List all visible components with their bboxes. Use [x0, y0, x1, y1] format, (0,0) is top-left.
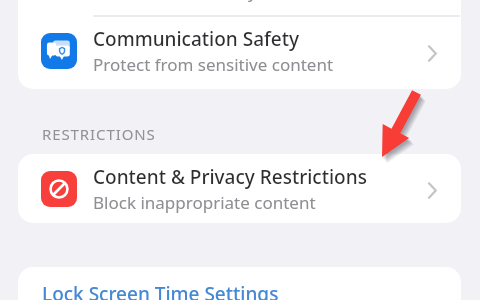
staticText: Lock Screen Time Settings [42, 281, 279, 300]
staticText: Protect from sensitive content [93, 53, 334, 76]
staticText: RESTRICTIONS [42, 124, 156, 144]
staticText: Content & Privacy Restrictions [93, 164, 367, 190]
button[interactable]: Content & Privacy Restrictions [18, 154, 461, 223]
staticText: Block inappropriate content [93, 191, 316, 214]
staticText: Communication Safety [93, 26, 299, 52]
button[interactable]: Communication Safety [18, 15, 461, 87]
button[interactable]: Lock Screen Time Settings [18, 267, 461, 300]
button[interactable]: Communication Limits [18, 0, 461, 13]
staticText: Set limits based on your contacts [93, 0, 357, 3]
